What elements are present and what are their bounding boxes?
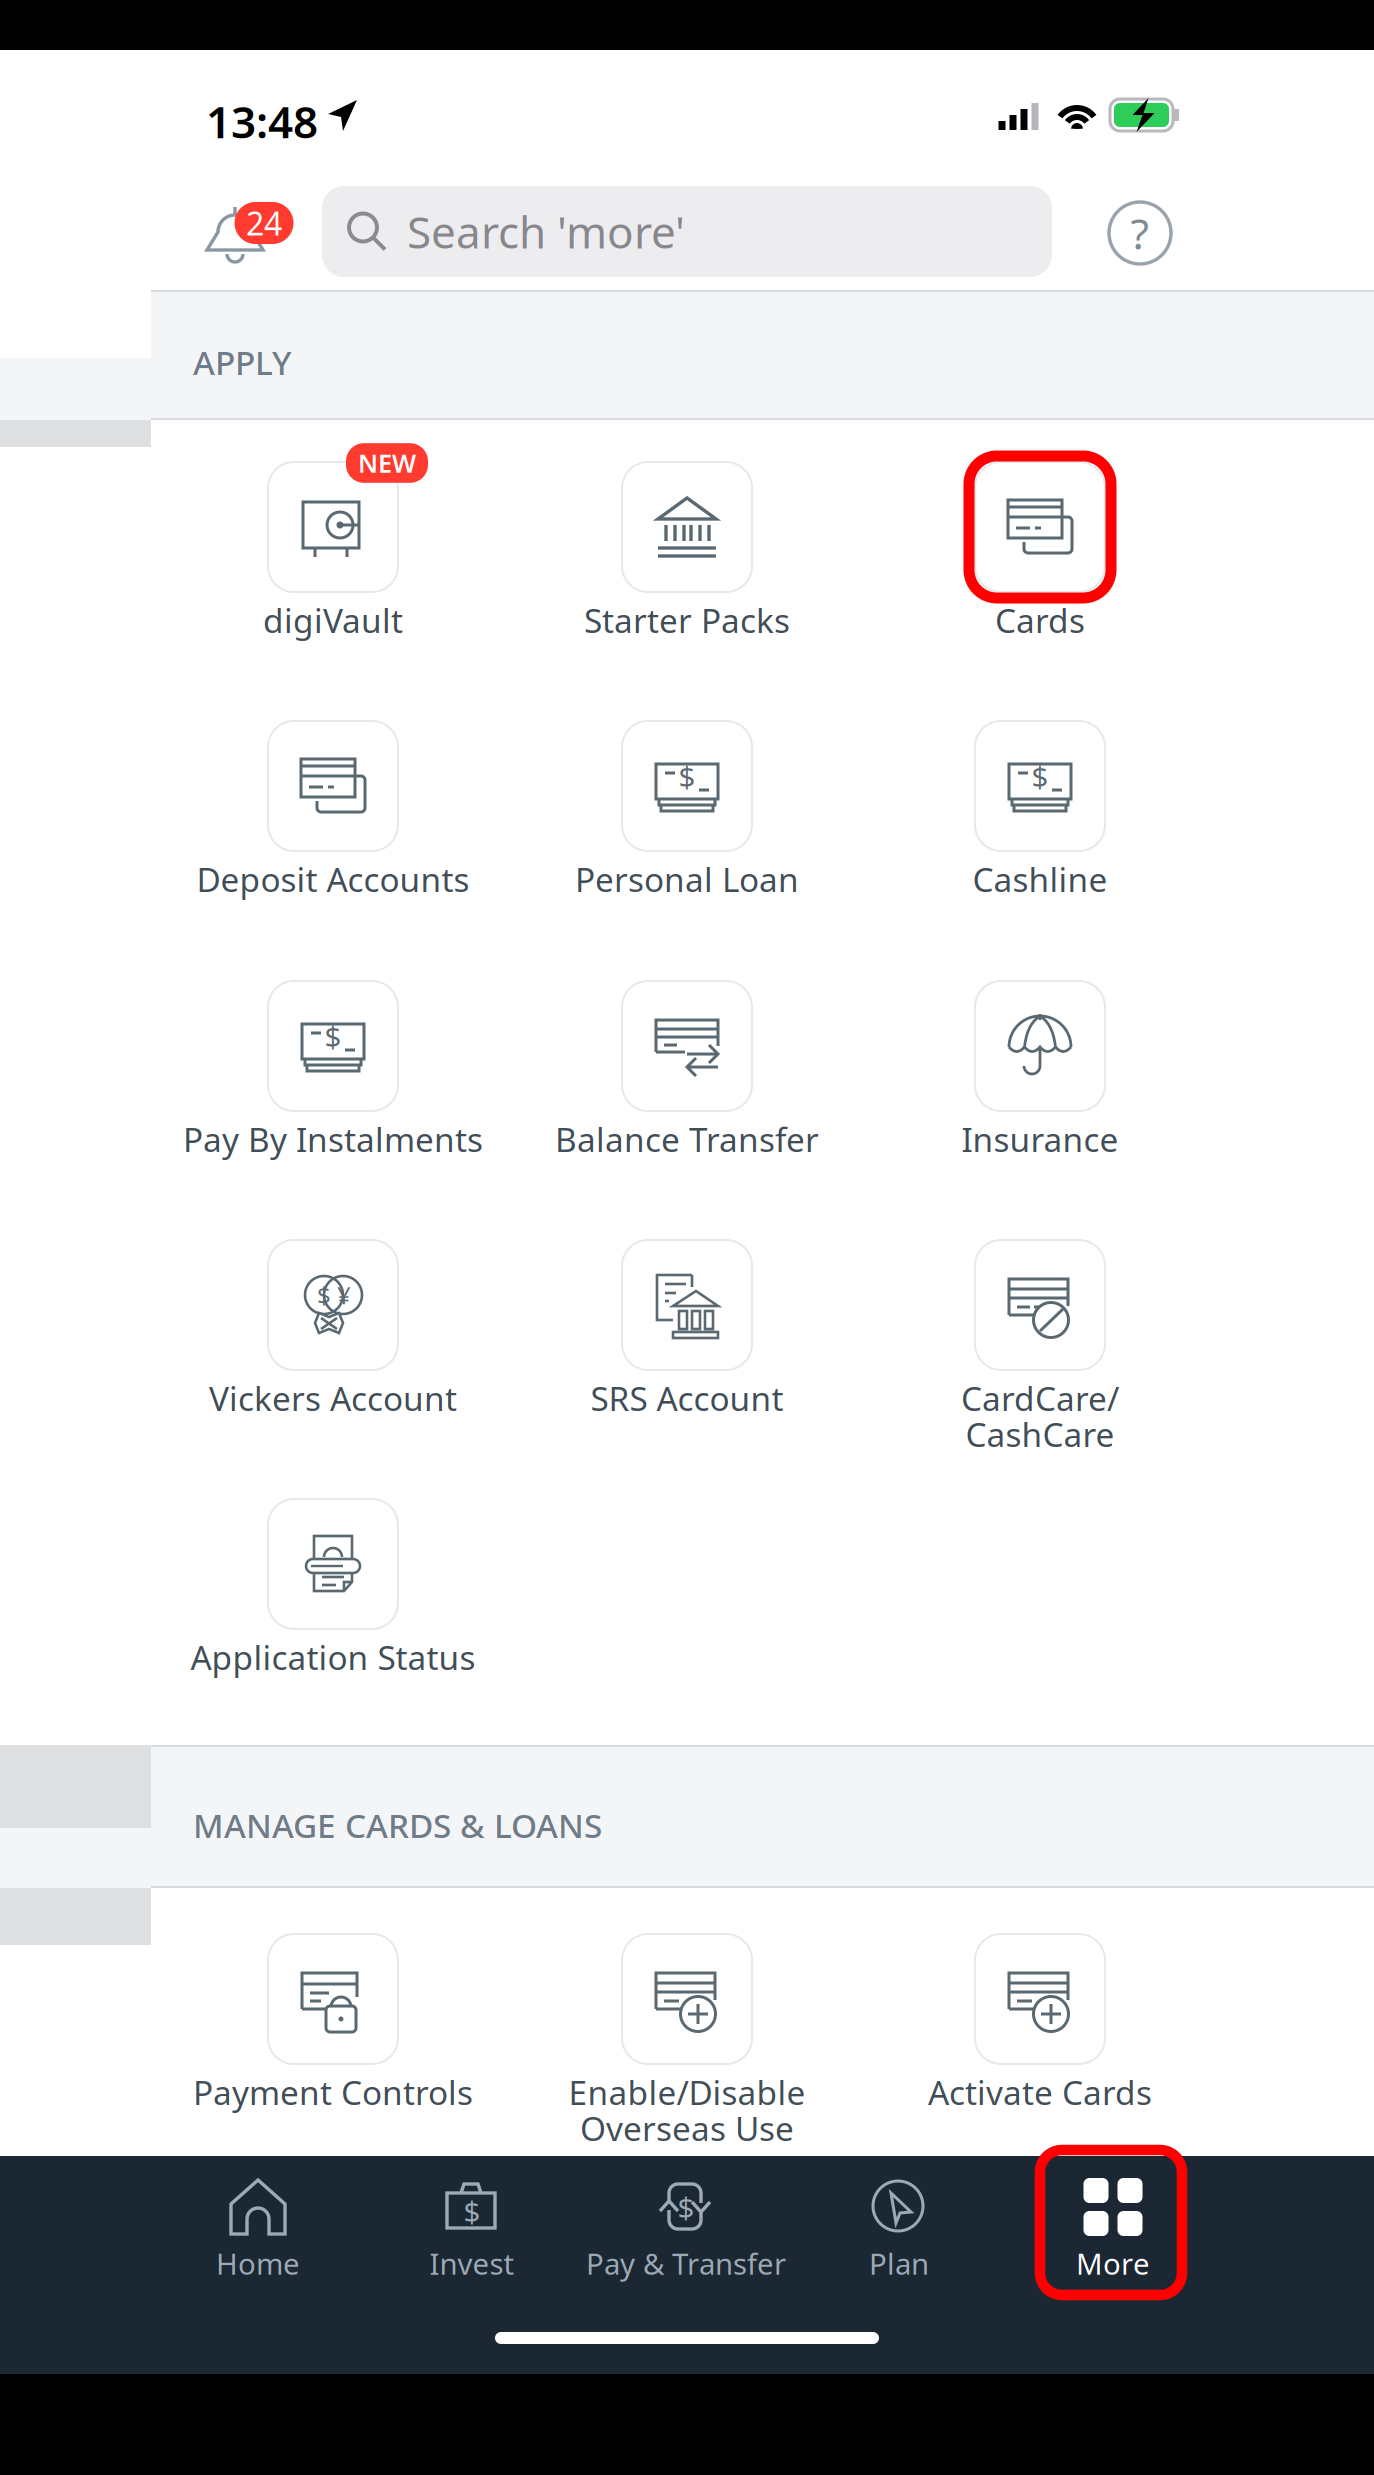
staticText: CashCare [965, 1412, 1114, 1456]
staticText: Personal Loan [575, 857, 799, 901]
staticText: Starter Packs [584, 598, 790, 642]
button[interactable]: Plan [769, 2178, 1029, 2298]
staticText: Application Status [190, 1635, 475, 1679]
button[interactable]: CardCare/ [870, 1240, 1210, 1500]
staticText: Invest [429, 2244, 514, 2283]
staticText: $ [317, 1279, 331, 1311]
staticText: More [1076, 2244, 1150, 2283]
staticText: $ [324, 1016, 341, 1055]
button[interactable]: NEW [163, 462, 503, 722]
button[interactable]: $ [556, 2178, 816, 2298]
staticText: 13:48 [206, 92, 318, 150]
staticText: digiVault [263, 598, 403, 642]
button[interactable]: Payment Controls [163, 1934, 503, 2194]
button[interactable]: Deposit Accounts [163, 721, 503, 981]
button[interactable]: Home [128, 2178, 388, 2298]
staticText: $ [677, 2187, 694, 2226]
button[interactable]: Activate Cards [870, 1934, 1210, 2194]
button[interactable]: 24 [185, 183, 285, 283]
button[interactable]: Search 'more' [322, 186, 1052, 277]
staticText: Activate Cards [928, 2070, 1152, 2114]
staticText: MANAGE CARDS & LOANS [193, 1803, 602, 1847]
staticText: Search 'more' [407, 202, 685, 261]
staticText: Cards [995, 598, 1085, 642]
button[interactable]: More [983, 2178, 1243, 2298]
button[interactable]: $ [342, 2178, 602, 2298]
staticText: Balance Transfer [555, 1117, 819, 1161]
staticText: 24 [246, 202, 282, 244]
staticText: Enable/Disable [568, 2070, 805, 2114]
button[interactable]: $ [870, 721, 1210, 981]
staticText: Pay By Instalments [183, 1117, 483, 1161]
button[interactable]: Starter Packs [517, 462, 857, 722]
staticText: $ [1031, 756, 1048, 795]
staticText: Cashline [972, 857, 1107, 901]
staticText: ¥ [337, 1279, 351, 1311]
staticText: Payment Controls [193, 2070, 473, 2114]
staticText: ? [1130, 205, 1149, 261]
button[interactable]: Application Status [163, 1499, 503, 1759]
button[interactable]: SRS Account [517, 1240, 857, 1500]
button[interactable]: Enable/Disable [517, 1934, 857, 2194]
button[interactable]: Cards [870, 462, 1210, 722]
staticText: Pay & Transfer [586, 2244, 786, 2283]
button[interactable]: $ [163, 981, 503, 1241]
staticText: SRS Account [590, 1376, 783, 1420]
staticText: $ [678, 756, 695, 795]
staticText: APPLY [193, 340, 291, 384]
button[interactable]: $ [517, 721, 857, 981]
staticText: Vickers Account [209, 1376, 457, 1420]
button[interactable]: Insurance [870, 981, 1210, 1241]
button[interactable]: Balance Transfer [517, 981, 857, 1241]
staticText: Overseas Use [580, 2106, 794, 2150]
staticText: $ [463, 2191, 480, 2230]
staticText: NEW [358, 446, 416, 480]
staticText: Deposit Accounts [196, 857, 469, 901]
staticText: Insurance [961, 1117, 1118, 1161]
button[interactable]: ? [1090, 183, 1190, 283]
staticText: CardCare/ [961, 1376, 1119, 1420]
staticText: Plan [869, 2244, 929, 2283]
staticText: Home [216, 2244, 300, 2283]
button[interactable]: $ [163, 1240, 503, 1500]
